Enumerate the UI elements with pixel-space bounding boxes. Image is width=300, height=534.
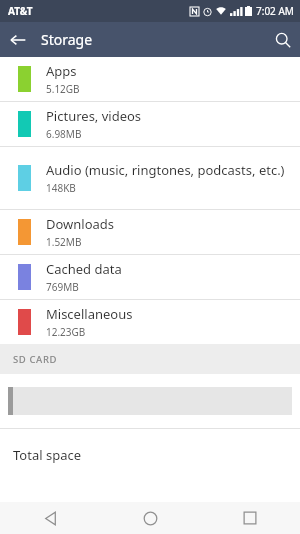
button[interactable]: Downloads (0, 210, 300, 254)
button[interactable]: Recents (200, 502, 300, 534)
staticText: 5.12GB (46, 82, 80, 96)
staticText: 148KB (46, 181, 76, 195)
staticText: 12.23GB (46, 325, 86, 339)
button[interactable]: Back (0, 22, 35, 57)
button[interactable]: Cached data (0, 255, 300, 299)
staticText: 1.52MB (46, 235, 82, 249)
staticText: Downloads (46, 215, 115, 233)
button[interactable]: Total space (0, 429, 300, 469)
button[interactable]: Apps (0, 57, 300, 101)
staticText: 7:02 AM (256, 4, 294, 18)
button[interactable]: Pictures, videos (0, 102, 300, 146)
staticText: SD CARD (13, 353, 58, 366)
staticText: Apps (46, 62, 77, 80)
button[interactable]: Search (265, 22, 300, 57)
button[interactable]: Home (100, 502, 200, 534)
staticText: 769MB (46, 280, 79, 294)
staticText: Audio (music, ringtones, podcasts, etc.) (46, 161, 285, 179)
staticText: 6.98MB (46, 127, 82, 141)
button[interactable]: Back (0, 502, 100, 534)
staticText: Pictures, videos (46, 107, 142, 125)
staticText: AT&T (8, 4, 33, 18)
button[interactable]: Miscellaneous (0, 300, 300, 344)
staticText: Storage (41, 30, 93, 49)
staticText: Cached data (46, 260, 122, 278)
staticText: Total space (13, 446, 81, 464)
button[interactable]: Audio (music, ringtones, podcasts, etc.) (0, 147, 300, 209)
staticText: Miscellaneous (46, 305, 133, 323)
